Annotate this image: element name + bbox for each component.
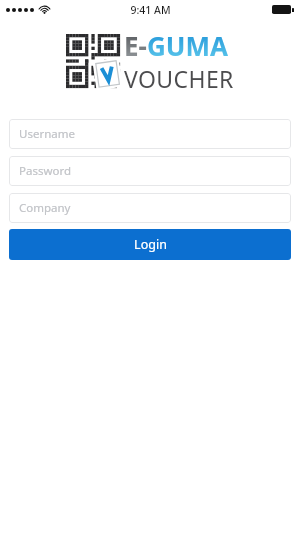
- button[interactable]: Company: [9, 193, 291, 223]
- staticText: 9:41 AM: [130, 3, 171, 17]
- button[interactable]: Password: [9, 156, 291, 186]
- button[interactable]: Login: [9, 229, 291, 260]
- staticText: E-: [124, 28, 147, 63]
- staticText: GUMA: [147, 28, 228, 63]
- button[interactable]: Username: [9, 119, 291, 149]
- staticText: Login: [134, 236, 167, 253]
- staticText: Company: [19, 200, 71, 216]
- staticText: VOUCHER: [124, 63, 234, 94]
- staticText: Password: [19, 163, 72, 179]
- staticText: Username: [19, 126, 75, 142]
